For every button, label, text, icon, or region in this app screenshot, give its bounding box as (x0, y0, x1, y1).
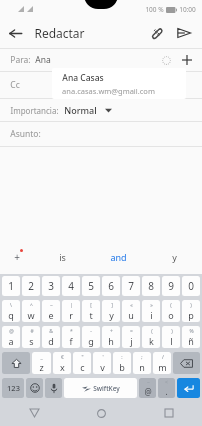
button[interactable]: Attach (142, 19, 170, 47)
staticText: k (149, 335, 154, 347)
button[interactable]: * (62, 326, 80, 348)
button[interactable]: ; (133, 352, 151, 374)
button[interactable]: is (34, 240, 90, 274)
button[interactable]: » (142, 300, 160, 322)
staticText: e (48, 309, 54, 321)
button[interactable]: € (53, 352, 71, 374)
staticText: ; (141, 354, 143, 361)
staticText: Redactar (34, 25, 85, 41)
button[interactable]: ~ (139, 378, 156, 398)
button[interactable]: Voice input (45, 378, 62, 398)
button[interactable]: Back (0, 18, 30, 48)
staticText: + (14, 250, 20, 264)
button[interactable]: [ (82, 300, 100, 322)
button[interactable]: More suggestions (0, 240, 34, 274)
staticText: SwiftKey (93, 384, 120, 393)
staticText: ( (170, 302, 172, 309)
button[interactable]: and (90, 240, 146, 274)
staticText: y (109, 309, 114, 321)
button[interactable]: Space (64, 378, 137, 398)
staticText: 4 (68, 279, 74, 293)
button[interactable]: 1 (2, 276, 20, 296)
button[interactable]: ] (102, 300, 120, 322)
button[interactable]: Cc (0, 72, 202, 98)
button[interactable]: < (158, 378, 175, 398)
button[interactable]: ^ (22, 300, 40, 322)
button[interactable]: Send (170, 19, 198, 47)
button[interactable]: / (153, 352, 171, 374)
button[interactable]: Add recipient (178, 51, 196, 69)
button[interactable]: 9 (162, 276, 180, 296)
button[interactable]: Back (0, 400, 68, 426)
button[interactable]: 5 (82, 276, 100, 296)
staticText: g (88, 335, 94, 347)
other: Loading (157, 51, 175, 69)
button[interactable]: 2 (22, 276, 40, 296)
button[interactable]: 3 (42, 276, 60, 296)
staticText: 9 (168, 279, 174, 293)
button[interactable]: \ (2, 300, 20, 322)
staticText: Cc (10, 79, 20, 91)
button[interactable]: 8 (142, 276, 160, 296)
button[interactable]: ~ (42, 300, 60, 322)
button[interactable]: | (62, 300, 80, 322)
button[interactable]: ' (93, 352, 111, 374)
staticText: 2 (28, 279, 34, 293)
button[interactable]: ( (162, 300, 180, 322)
staticText: 7 (128, 279, 134, 293)
button[interactable]: Asunto: (0, 122, 202, 146)
button[interactable]: " (73, 352, 91, 374)
staticText: m (158, 361, 167, 373)
staticText: @ (144, 386, 152, 397)
button[interactable]: + (102, 326, 120, 348)
staticText: j (130, 335, 133, 347)
staticText: u (128, 309, 134, 321)
staticText: ana.casas.wm@gmail.com (62, 86, 155, 96)
staticText: : (121, 354, 123, 361)
staticText: Ana (35, 54, 51, 66)
button[interactable]: Backspace (173, 352, 200, 374)
staticText: . (165, 386, 168, 397)
button[interactable]: 7 (122, 276, 140, 296)
button[interactable]: 0 (182, 276, 200, 296)
button[interactable]: ) (162, 326, 180, 348)
staticText: < (165, 379, 168, 386)
button[interactable]: « (122, 300, 140, 322)
staticText: @ (9, 328, 14, 335)
staticText: 5 (88, 279, 94, 293)
staticText: v (100, 361, 105, 373)
button[interactable]: Numbers (2, 378, 24, 398)
button[interactable]: 6 (102, 276, 120, 296)
button[interactable]: Ana Casas (52, 68, 186, 99)
button[interactable]: - (82, 326, 100, 348)
button[interactable]: Shift (2, 352, 30, 374)
staticText: f (69, 335, 73, 347)
staticText: a (8, 335, 14, 347)
button[interactable]: Home (68, 400, 135, 426)
staticText: Normal (64, 104, 97, 116)
button[interactable]: @ (2, 326, 20, 348)
button[interactable]: ( (142, 326, 160, 348)
staticText: i (150, 309, 153, 321)
button[interactable]: Para: (0, 49, 202, 71)
button[interactable]: Recents (135, 400, 202, 426)
button[interactable]: = (122, 326, 140, 348)
staticText: ] (111, 302, 113, 309)
button[interactable]: & (42, 326, 60, 348)
button[interactable]: # (22, 326, 40, 348)
button[interactable]: Emoji (26, 378, 43, 398)
button[interactable]: y (146, 240, 202, 274)
staticText: l (170, 335, 173, 347)
button[interactable]: % (182, 326, 200, 348)
button[interactable]: _ (32, 352, 51, 374)
button[interactable]: Enter (177, 378, 200, 398)
button[interactable]: 4 (62, 276, 80, 296)
button[interactable]: : (113, 352, 131, 374)
staticText: + (110, 328, 113, 335)
staticText: d (48, 335, 54, 347)
button[interactable]: Importancia: (0, 99, 202, 121)
staticText: n (139, 361, 145, 373)
staticText: Para: (10, 54, 31, 66)
button[interactable]: ) (182, 300, 200, 322)
staticText: « (130, 302, 133, 309)
